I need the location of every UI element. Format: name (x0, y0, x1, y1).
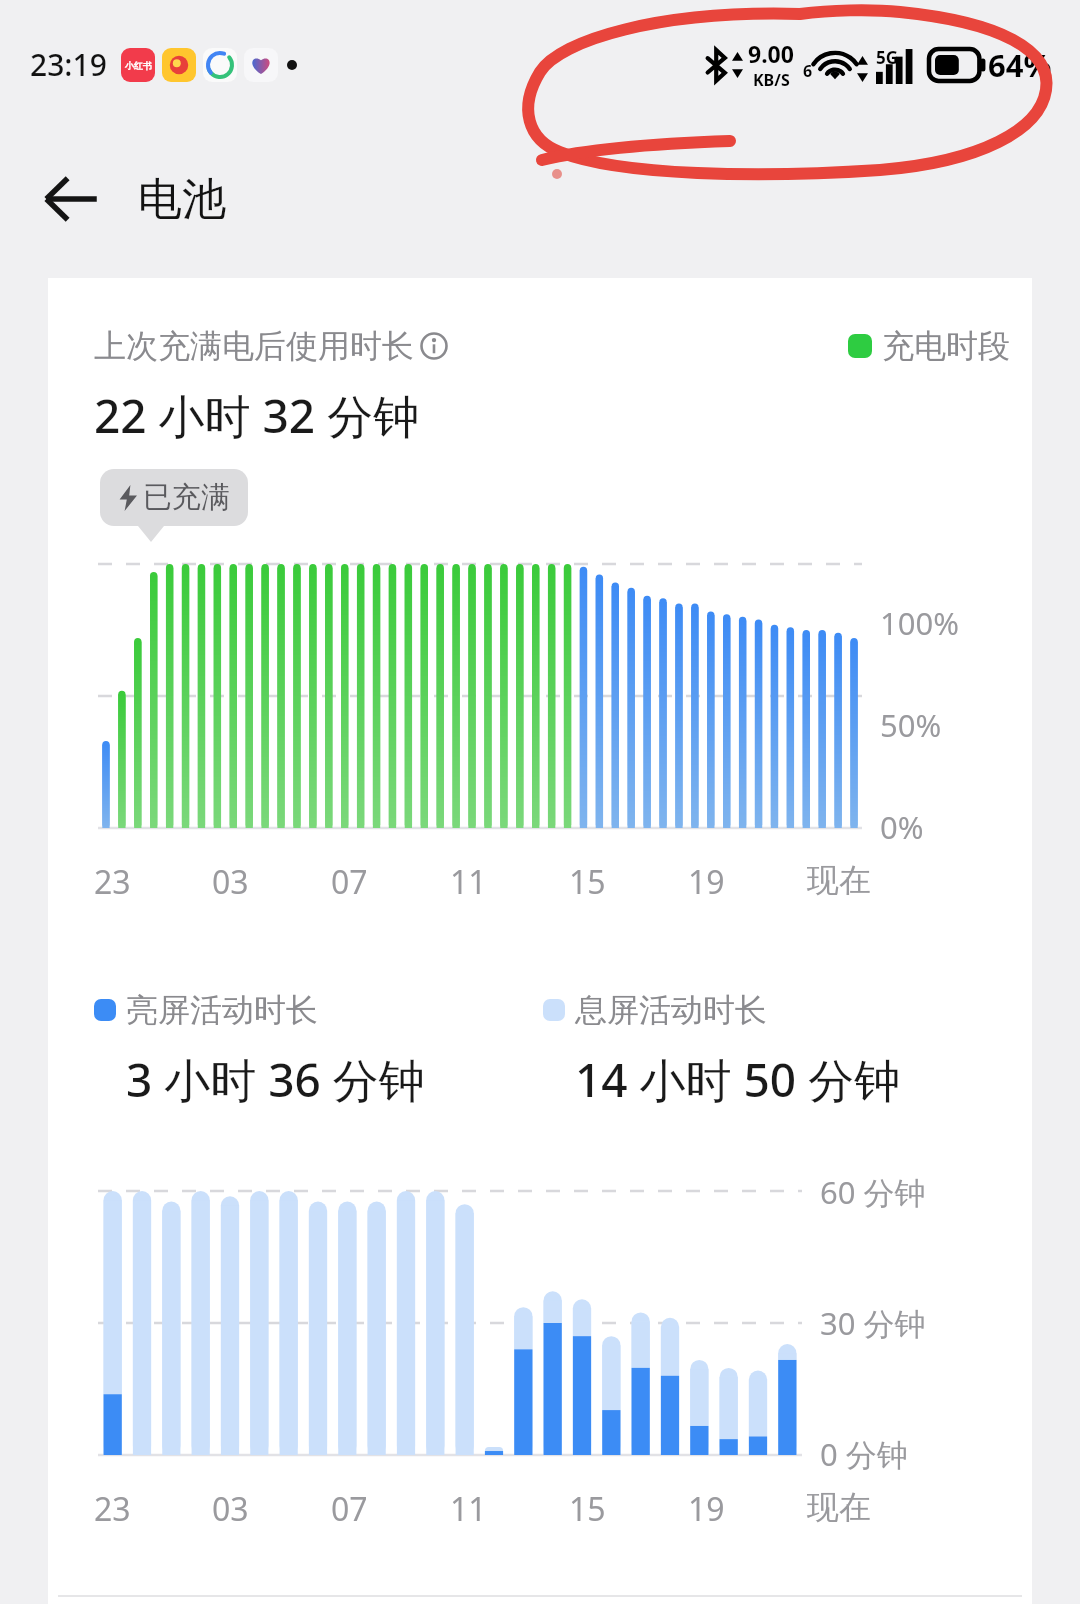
staticText: 19 (688, 860, 725, 904)
staticText: 6 (803, 60, 813, 82)
staticText: 23 (94, 1487, 131, 1531)
staticText: 亮屏活动时长 (126, 990, 318, 1030)
staticText: 15 (569, 860, 606, 904)
staticText: 11 (450, 1487, 487, 1531)
staticText: 100% (880, 602, 959, 644)
staticText: 0% (880, 806, 924, 848)
staticText: 07 (331, 860, 368, 904)
staticText: 23 (94, 860, 131, 904)
staticText: 15 (569, 1487, 606, 1531)
staticText: KB/S (753, 69, 790, 91)
staticText: 19 (688, 1487, 725, 1531)
staticText: 现在 (807, 1487, 871, 1527)
staticText: 14 小时 50 分钟 (575, 1048, 901, 1111)
staticText: 现在 (807, 860, 871, 900)
staticText: 30 分钟 (820, 1302, 926, 1344)
staticText: 已充满 (143, 479, 230, 516)
staticText: 23:19 (30, 44, 107, 85)
staticText: 11 (450, 860, 487, 904)
staticText: 小红书 (125, 60, 152, 71)
staticText: 60 分钟 (820, 1171, 926, 1213)
staticText: 3 小时 36 分钟 (126, 1048, 425, 1111)
button[interactable]: 返回 (28, 156, 114, 242)
staticText: 22 小时 32 分钟 (94, 384, 420, 447)
staticText: 息屏活动时长 (575, 990, 767, 1030)
staticText: 电池 (138, 172, 226, 227)
staticText: 上次充满电后使用时长 (94, 326, 414, 366)
staticText: 50% (880, 704, 942, 746)
staticText: 07 (331, 1487, 368, 1531)
staticText: 03 (212, 1487, 249, 1531)
staticText: 64% (988, 44, 1052, 86)
staticText: 5G (876, 46, 899, 69)
staticText: 充电时段 (882, 326, 1010, 366)
staticText: 0 分钟 (820, 1433, 908, 1475)
staticText: 03 (212, 860, 249, 904)
staticText: 9.00 (748, 38, 794, 69)
